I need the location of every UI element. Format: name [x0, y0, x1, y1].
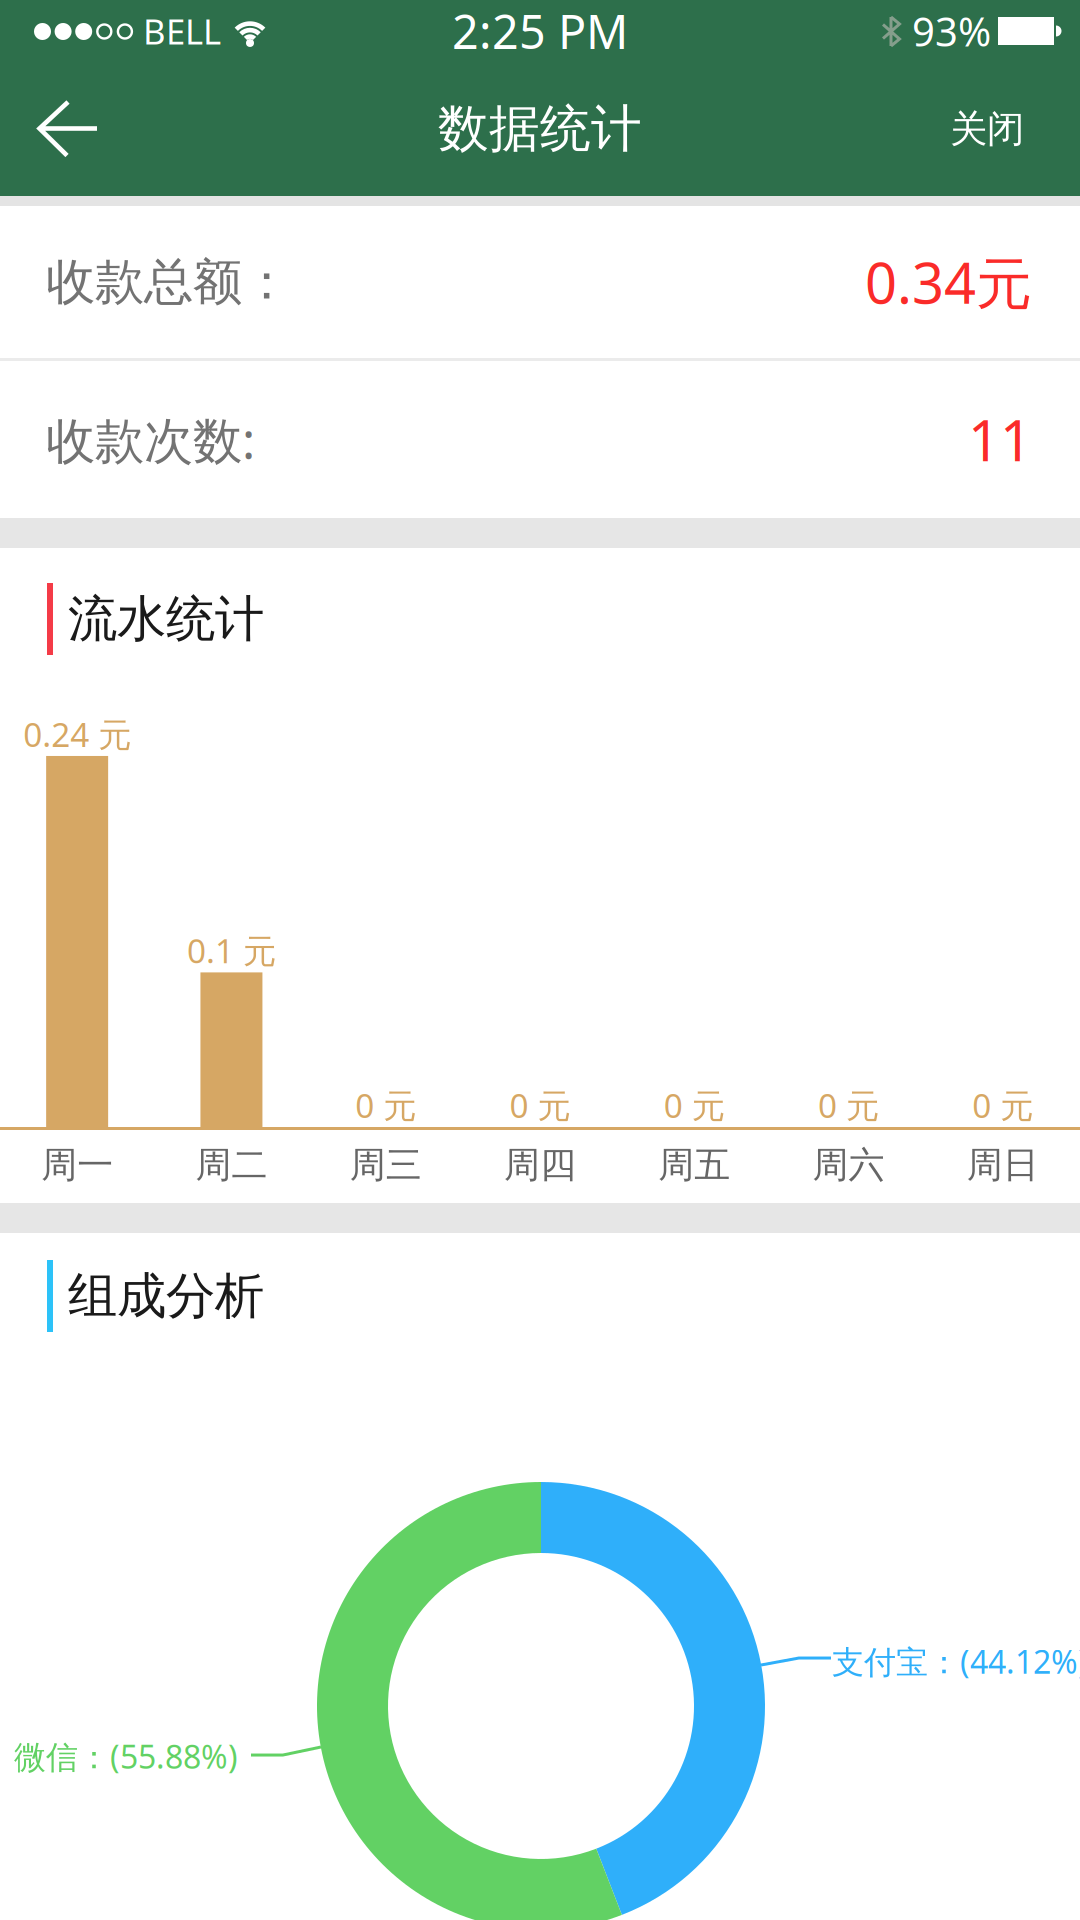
staticText: 0 元	[972, 1083, 1033, 1127]
staticText: 0 元	[509, 1083, 570, 1127]
staticText: 11	[968, 402, 1032, 477]
staticText: BELL	[143, 8, 221, 54]
staticText: 0.1 元	[187, 928, 276, 973]
staticText: 周六	[813, 1143, 885, 1187]
staticText: 微信：(55.88%)	[14, 1735, 238, 1777]
staticText: 数据统计	[438, 98, 642, 160]
staticText: 93%	[912, 4, 991, 57]
staticText: 0.24 元	[23, 712, 131, 756]
staticText: 支付宝：(44.12%)	[832, 1640, 1080, 1682]
staticText: 0 元	[664, 1083, 725, 1127]
staticText: 周四	[504, 1143, 576, 1187]
button[interactable]: Back	[0, 102, 98, 156]
staticText: 周日	[967, 1143, 1039, 1187]
staticText: 周一	[41, 1143, 113, 1187]
button[interactable]: 关闭	[950, 106, 1080, 152]
staticText: 2:25 PM	[452, 0, 628, 62]
staticText: 收款次数:	[46, 407, 255, 472]
staticText: 0 元	[355, 1083, 416, 1127]
staticText: 流水统计	[68, 589, 264, 649]
staticText: 周五	[658, 1143, 730, 1187]
staticText: 关闭	[950, 106, 1024, 152]
staticText: 周三	[350, 1143, 422, 1187]
staticText: 0 元	[818, 1083, 879, 1127]
staticText: 组成分析	[68, 1266, 264, 1326]
staticText: 0.34元	[865, 245, 1032, 319]
staticText: 收款总额：	[46, 252, 291, 312]
staticText: 周二	[195, 1143, 267, 1187]
